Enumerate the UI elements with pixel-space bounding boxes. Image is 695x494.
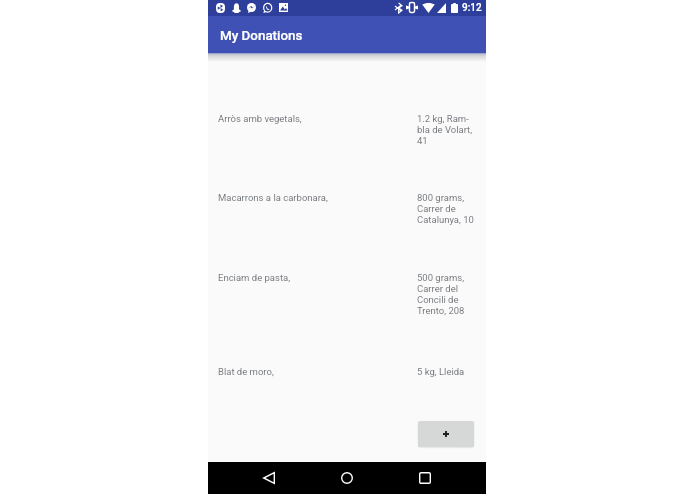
staticText: My Donations [220, 28, 303, 44]
button[interactable]: Add donation [418, 421, 474, 447]
staticText: 800 grams, Carrer de Catalunya, 10 [417, 193, 483, 226]
button[interactable]: Enciam de pasta, [208, 273, 486, 317]
staticText: Enciam de pasta, [218, 273, 408, 284]
button[interactable]: Arròs amb vegetals, [208, 114, 486, 147]
button[interactable]: Back [255, 463, 283, 493]
staticText: Blat de moro, [218, 367, 408, 378]
staticText: Macarrons a la carbonara, [218, 193, 408, 204]
staticText: 9:12 [462, 2, 482, 14]
staticText: Arròs amb vegetals, [218, 114, 408, 125]
button[interactable]: Recents [411, 463, 439, 493]
button[interactable]: Home [333, 463, 361, 493]
button[interactable]: Macarrons a la carbonara, [208, 193, 486, 226]
staticText: 5 kg, Lleida [417, 367, 483, 378]
staticText: 500 grams, Carrer del Concili de Trento,… [417, 273, 483, 317]
staticText: 1.2 kg, Ram- bla de Volart, 41 [417, 114, 483, 147]
button[interactable]: Blat de moro, [208, 367, 486, 378]
